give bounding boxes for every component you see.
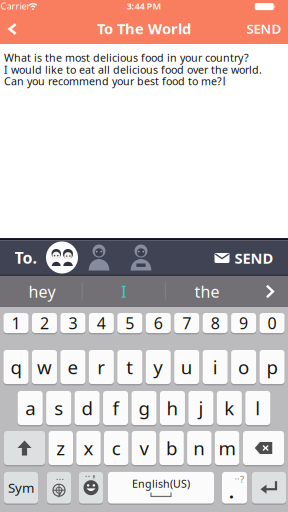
- button[interactable]: i: [203, 350, 228, 384]
- staticText: z: [56, 436, 65, 460]
- staticText: q: [10, 355, 21, 379]
- staticText: 8: [211, 312, 220, 334]
- button[interactable]: n: [187, 431, 211, 465]
- staticText: Can you recommend your best food to me?: [4, 74, 222, 88]
- staticText: 2: [40, 312, 49, 334]
- staticText: Carrier: [0, 0, 30, 12]
- button[interactable]: t: [117, 350, 142, 384]
- staticText: English(US): [132, 477, 190, 491]
- staticText: To The World: [97, 19, 191, 38]
- staticText: m: [218, 436, 235, 460]
- staticText: u: [181, 355, 193, 379]
- button[interactable]: b: [159, 431, 184, 465]
- button[interactable]: u: [174, 350, 199, 384]
- staticText: y: [153, 355, 163, 379]
- button[interactable]: v: [132, 431, 156, 465]
- button[interactable]: 0: [260, 313, 285, 333]
- staticText: j: [198, 396, 203, 420]
- button[interactable]: 7: [174, 313, 199, 333]
- staticText: c: [112, 436, 121, 460]
- button[interactable]: Shift: [4, 431, 45, 465]
- staticText: I would like to eat all delicious food o…: [4, 62, 262, 77]
- staticText: b: [166, 436, 177, 460]
- button[interactable]: 8: [203, 313, 228, 333]
- button[interactable]: y: [146, 350, 171, 384]
- staticText: Sym: [8, 479, 34, 496]
- staticText: 7: [182, 312, 191, 334]
- button[interactable]: p: [260, 350, 285, 384]
- button[interactable]: c: [104, 431, 128, 465]
- button[interactable]: 2: [32, 313, 57, 333]
- button[interactable]: Delete: [243, 431, 284, 465]
- button[interactable]: SEND: [246, 20, 281, 37]
- staticText: p: [267, 355, 278, 379]
- staticText: 3:44 PM: [126, 0, 161, 12]
- staticText: s: [54, 396, 63, 420]
- button[interactable]: s: [46, 391, 71, 425]
- button[interactable]: Recipient: girls: [130, 244, 152, 270]
- staticText: hey: [28, 281, 55, 302]
- staticText: t: [126, 355, 133, 379]
- staticText: What is the most delicious food in your …: [4, 50, 249, 65]
- button[interactable]: Change language: [47, 472, 71, 503]
- staticText: 9: [239, 312, 248, 334]
- button[interactable]: Space: [108, 472, 214, 503]
- button[interactable]: the: [167, 276, 247, 307]
- staticText: i: [213, 355, 218, 379]
- button[interactable]: j: [188, 391, 213, 425]
- staticText: SEND: [246, 20, 281, 37]
- button[interactable]: I: [84, 276, 164, 307]
- staticText: n: [193, 436, 205, 460]
- staticText: w: [37, 355, 52, 379]
- button[interactable]: e: [60, 350, 85, 384]
- button[interactable]: Back: [2, 19, 22, 39]
- button[interactable]: Recipient: boys: [88, 244, 110, 270]
- button[interactable]: 6: [146, 313, 171, 333]
- button[interactable]: Emoji: [79, 472, 103, 503]
- staticText: SEND: [234, 248, 273, 268]
- staticText: k: [224, 396, 234, 420]
- button[interactable]: m: [215, 431, 239, 465]
- staticText: 1: [11, 312, 20, 334]
- button[interactable]: f: [103, 391, 128, 425]
- button[interactable]: k: [217, 391, 242, 425]
- button[interactable]: d: [75, 391, 100, 425]
- button[interactable]: l: [245, 391, 270, 425]
- button[interactable]: 1: [3, 313, 28, 333]
- button[interactable]: 9: [231, 313, 256, 333]
- button[interactable]: 3: [60, 313, 85, 333]
- button[interactable]: More suggestions: [255, 276, 285, 307]
- staticText: 6: [154, 312, 163, 334]
- staticText: 4: [97, 312, 106, 334]
- staticText: 3: [68, 312, 77, 334]
- button[interactable]: SEND: [214, 248, 273, 268]
- button[interactable]: r: [89, 350, 114, 384]
- button[interactable]: a: [18, 391, 43, 425]
- staticText: h: [166, 396, 178, 420]
- staticText: e: [67, 355, 78, 379]
- button[interactable]: 4: [89, 313, 114, 333]
- button[interactable]: o: [231, 350, 256, 384]
- staticText: the: [194, 281, 219, 302]
- button[interactable]: Return: [252, 472, 286, 503]
- button[interactable]: q: [3, 350, 28, 384]
- button[interactable]: Period: [222, 472, 247, 503]
- staticText: l: [255, 396, 260, 420]
- staticText: d: [82, 396, 93, 420]
- staticText: r: [97, 355, 105, 379]
- staticText: v: [139, 436, 148, 460]
- button[interactable]: 5: [117, 313, 142, 333]
- staticText: ?: [240, 473, 244, 485]
- staticText: f: [112, 396, 118, 420]
- staticText: 5: [125, 312, 134, 334]
- button[interactable]: hey: [2, 276, 82, 307]
- button[interactable]: x: [76, 431, 101, 465]
- button[interactable]: Recipient: everyone: [46, 241, 78, 273]
- button[interactable]: h: [160, 391, 185, 425]
- staticText: To.: [14, 247, 36, 268]
- button[interactable]: w: [32, 350, 57, 384]
- staticText: 0: [268, 312, 277, 334]
- button[interactable]: g: [131, 391, 156, 425]
- button[interactable]: Sym: [4, 472, 38, 503]
- button[interactable]: z: [49, 431, 73, 465]
